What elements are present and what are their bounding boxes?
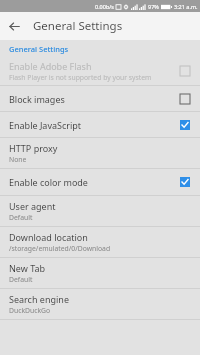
button[interactable]: Disabled toggle bbox=[177, 91, 193, 107]
staticText: General Settings bbox=[33, 18, 123, 34]
staticText: General Settings bbox=[9, 44, 69, 54]
staticText: User agent bbox=[9, 200, 56, 212]
button[interactable]: User agent bbox=[0, 196, 200, 226]
button[interactable]: Search engine bbox=[0, 289, 200, 319]
button[interactable]: Enable color mode bbox=[0, 169, 200, 195]
button[interactable]: Enabled toggle bbox=[177, 117, 193, 133]
button[interactable]: Enabled toggle bbox=[177, 174, 193, 190]
staticText: Search engine bbox=[9, 293, 69, 305]
button[interactable]: HTTP proxy bbox=[0, 138, 200, 168]
staticText: Enable Adobe Flash bbox=[9, 60, 92, 72]
staticText: New Tab bbox=[9, 262, 46, 274]
staticText: 97% bbox=[148, 3, 159, 10]
staticText: Flash Player is not supported by your sy… bbox=[9, 73, 152, 82]
staticText: None bbox=[9, 155, 27, 164]
button[interactable]: Block images bbox=[0, 86, 200, 111]
staticText: HTTP proxy bbox=[9, 142, 58, 154]
staticText: /storage/emulated/0/Download bbox=[9, 244, 111, 253]
staticText: Enable JavaScript bbox=[9, 119, 82, 131]
button[interactable]: Enable Adobe Flash bbox=[0, 57, 200, 85]
staticText: 3:21 a.m. bbox=[174, 3, 198, 10]
staticText: 0.00b/s bbox=[95, 3, 114, 10]
button[interactable]: New Tab bbox=[0, 258, 200, 288]
button[interactable]: Disabled toggle bbox=[177, 63, 193, 79]
staticText: Block images bbox=[9, 93, 65, 105]
staticText: Default bbox=[9, 213, 33, 222]
button[interactable]: Enable JavaScript bbox=[0, 112, 200, 137]
staticText: DuckDuckGo bbox=[9, 306, 51, 315]
staticText: Enable color mode bbox=[9, 176, 88, 188]
button[interactable]: Download location bbox=[0, 227, 200, 257]
staticText: Download location bbox=[9, 231, 88, 243]
button[interactable]: Back bbox=[0, 12, 28, 40]
staticText: Default bbox=[9, 275, 33, 284]
